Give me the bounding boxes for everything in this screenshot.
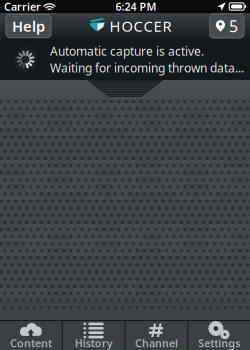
staticText: 5 [229, 15, 238, 37]
button[interactable]: Settings [188, 321, 250, 350]
button[interactable]: Help [6, 14, 51, 38]
button[interactable]: History [63, 321, 125, 350]
staticText: Settings [198, 336, 240, 350]
button[interactable]: Content [0, 321, 62, 350]
button[interactable]: Channel [125, 321, 187, 350]
staticText: History [75, 336, 113, 350]
staticText: Channel [135, 336, 178, 350]
button[interactable]: Nearby users [210, 14, 244, 38]
staticText: Help [12, 16, 45, 36]
staticText: Carrier [4, 0, 41, 14]
staticText: HOCCER [109, 16, 171, 36]
staticText: Content [10, 336, 52, 350]
staticText: Automatic capture is active. [50, 43, 204, 59]
staticText: 6:24 PM [116, 0, 157, 14]
staticText: Waiting for incoming thrown data... [50, 60, 244, 76]
